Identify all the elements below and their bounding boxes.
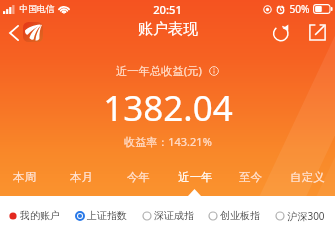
staticText: 50% [289,2,310,16]
button[interactable]: 近一年 [173,166,217,188]
button[interactable]: 本周 [2,166,46,188]
staticText: 沪深300 [287,209,325,223]
button[interactable]: 至今 [228,166,272,188]
staticText: 自定义 [290,170,325,184]
staticText: 本周 [13,170,36,184]
staticText: 收益率：143.21% [124,134,212,149]
button[interactable]: Refresh [269,20,294,45]
staticText: 我的账户 [20,209,60,222]
button[interactable]: 深证成指 [141,204,195,227]
button[interactable]: Back [2,21,25,44]
staticText: 深证成指 [154,209,194,222]
button[interactable]: 本月 [59,166,103,188]
button[interactable]: 创业板指 [207,204,261,227]
staticText: 账户表现 [138,20,198,39]
button[interactable]: 沪深300 [274,204,326,228]
button[interactable]: 今年 [116,166,160,188]
button[interactable]: App logo [23,22,43,42]
staticText: 20:51 [153,2,182,17]
staticText: 本月 [70,170,93,184]
button[interactable]: Share [305,20,330,45]
button[interactable]: 上证指数 [74,204,128,227]
staticText: 至今 [239,170,262,184]
staticText: 上证指数 [87,209,127,222]
button[interactable]: 我的账户 [7,204,61,227]
staticText: 中国电信 [19,4,55,15]
staticText: 近一年总收益(元) [116,63,202,78]
button[interactable]: 自定义 [285,166,329,188]
staticText: 创业板指 [220,209,260,222]
staticText: 今年 [127,170,150,184]
staticText: 1382.04 [103,84,233,132]
staticText: 近一年 [178,170,213,184]
